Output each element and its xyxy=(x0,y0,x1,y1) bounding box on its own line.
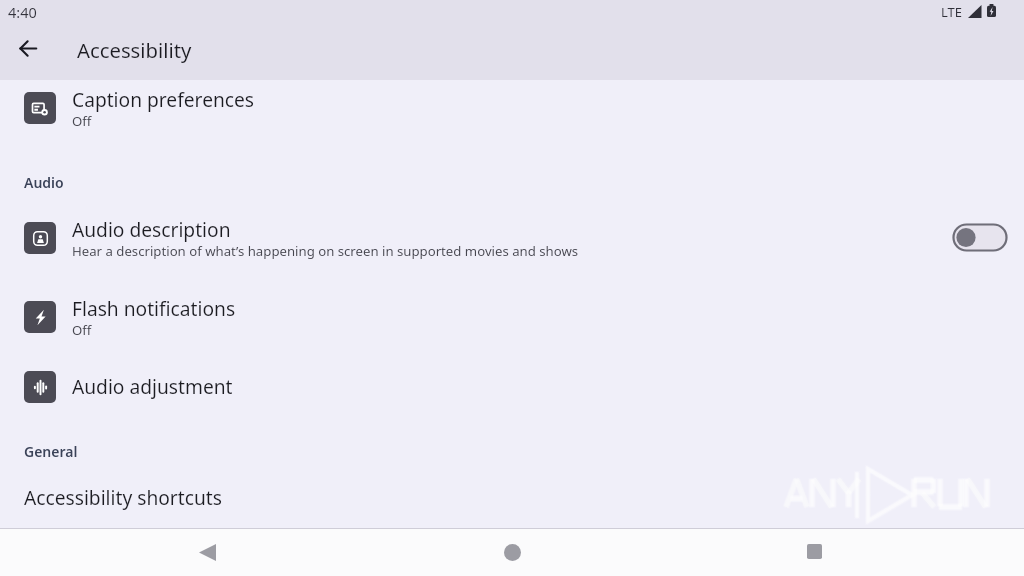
button[interactable]: Back xyxy=(167,532,247,572)
staticText: Flash notifications xyxy=(72,295,236,321)
staticText: 4:40 xyxy=(8,2,37,22)
staticText: General xyxy=(24,442,78,461)
button[interactable]: Audio adjustment xyxy=(0,357,1024,417)
staticText: Accessibility xyxy=(77,36,192,64)
staticText: Off xyxy=(72,321,92,339)
staticText: Audio description xyxy=(72,216,231,242)
staticText: Accessibility shortcuts xyxy=(24,484,222,510)
staticText: Hear a description of what’s happening o… xyxy=(72,242,579,260)
staticText: LTE xyxy=(941,3,963,21)
button[interactable]: Accessibility shortcuts xyxy=(0,475,1024,519)
button[interactable]: Flash notifications xyxy=(0,287,1024,347)
staticText: Audio adjustment xyxy=(72,373,233,399)
button[interactable]: Audio description xyxy=(0,208,1024,268)
button[interactable]: Caption preferences xyxy=(0,78,1024,138)
staticText: Off xyxy=(72,112,92,130)
button[interactable]: Home xyxy=(472,532,552,572)
button[interactable]: Back xyxy=(6,26,50,70)
staticText: Caption preferences xyxy=(72,86,255,112)
button[interactable]: Audio description toggle xyxy=(945,215,1015,259)
button[interactable]: Recent apps xyxy=(774,531,854,571)
staticText: Audio xyxy=(24,173,64,192)
